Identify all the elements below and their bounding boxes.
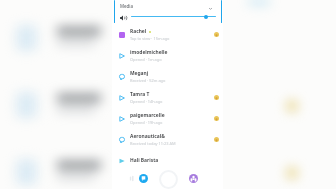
button[interactable]: Tamra T: [112, 87, 223, 108]
staticText: Opened · 14h ago: [130, 99, 163, 104]
staticText: Tap to view · 15m ago: [130, 36, 170, 41]
staticText: paigemarcelle: [130, 112, 165, 119]
staticText: Tamra T: [130, 91, 150, 98]
staticText: Received today 11:23 AM: [130, 141, 176, 146]
button[interactable]: Aeronautical&: [112, 129, 223, 150]
staticText: Meganj: [130, 70, 149, 77]
staticText: Opened · 19h ago: [130, 120, 163, 125]
button[interactable]: Meganj: [112, 66, 223, 87]
button[interactable]: Map: [129, 175, 136, 182]
staticText: Aeronautical&: [130, 133, 165, 140]
button[interactable]: Rachel: [112, 24, 223, 45]
staticText: Opened · 1m ago: [130, 57, 162, 62]
staticText: imodelmichelle: [130, 49, 168, 56]
button[interactable]: Camera: [159, 170, 178, 189]
button[interactable]: imodelmichelle: [112, 45, 223, 66]
staticText: Hali Barista: [130, 157, 159, 164]
button[interactable]: Friends: [189, 174, 198, 183]
staticText: Received · 52m ago: [130, 78, 166, 83]
button[interactable]: Chat: [139, 174, 148, 183]
staticText: Rachel: [130, 28, 147, 35]
button[interactable]: Hali Barista: [112, 150, 223, 171]
button[interactable]: paigemarcelle: [112, 108, 223, 129]
staticText: Media: [120, 3, 133, 9]
